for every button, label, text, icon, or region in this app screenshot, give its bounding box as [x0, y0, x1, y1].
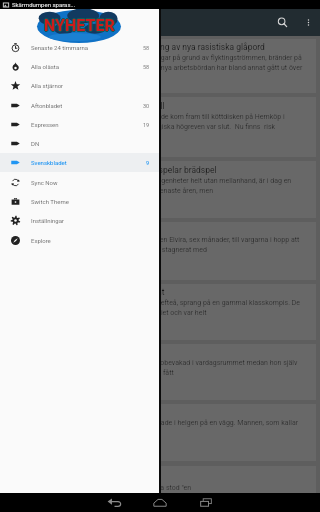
button[interactable]: DN [0, 134, 159, 153]
staticText: Efter ett halvår i fångenskap flyttas de… [11, 236, 307, 253]
staticText: Köttet var slut och kunderna blev helt f… [11, 101, 165, 111]
staticText: Aftonbladet [31, 102, 63, 109]
staticText: Sync Now [31, 179, 58, 186]
button[interactable]: Switch Theme [0, 192, 159, 211]
button[interactable]: Explore [0, 231, 159, 250]
button[interactable]: More options [296, 9, 320, 36]
staticText: Switch Theme [31, 198, 69, 205]
staticText: Expressen [31, 121, 59, 128]
button[interactable]: Skräcken när tvååring gjorde [4, 344, 316, 400]
staticText: Alla olästa [31, 63, 60, 70]
staticText: 9 [146, 160, 150, 166]
staticText: NYHETER [45, 16, 116, 35]
staticText: NYHETER [44, 16, 115, 35]
button[interactable]: Bostadsbristen: Utländska spekulanter sp… [4, 161, 316, 218]
button[interactable]: Nytt knep för att undvika gammal bekant [4, 284, 316, 340]
button[interactable]: Search [268, 9, 296, 36]
button[interactable]: Köttet var slut och kunderna blev helt f… [4, 97, 316, 157]
button[interactable]: Allt fler polisanmälningar: Ökad utveckl… [4, 39, 316, 93]
staticText: Senaste 24 timmarna [31, 44, 89, 51]
button[interactable]: Den 43-årige mannen från Upplands Väsby … [4, 404, 316, 461]
button[interactable]: Inställningar [0, 211, 159, 230]
staticText: Det blev ett rejält chockbesked för kund… [11, 113, 307, 130]
staticText: Den 43-årige mannen från Upplands Väsby … [11, 419, 307, 436]
staticText: NYHETER [43, 16, 114, 35]
staticText: NYHETER [44, 15, 115, 34]
staticText: Det var i helgen som Johan, 29, säljare … [11, 299, 307, 316]
button[interactable]: Back [91, 493, 137, 512]
button[interactable]: Svenskbladet [0, 153, 159, 172]
staticText: Inställningar [31, 217, 64, 224]
staticText: NYHETER [44, 17, 115, 36]
staticText: Explore [31, 237, 51, 244]
staticText: Bostadsbristen: Utländska spekulanter sp… [11, 165, 217, 175]
staticText: Allt fler svenskar väljer numera att hyr… [11, 177, 307, 194]
button[interactable]: Alla stjärnor [0, 76, 159, 95]
button[interactable]: Senaste 24 timmarna [0, 38, 159, 57]
staticText: Nytt knep för att undvika gammal bekant [11, 287, 165, 297]
button[interactable]: Expressen [0, 115, 159, 134]
staticText: Mamman lämnade sin lilla tvååriga dotter… [11, 359, 307, 376]
staticText: Svenskbladet [31, 159, 67, 166]
staticText: 58 [143, 45, 150, 51]
button[interactable]: Alla olästa [0, 57, 159, 76]
staticText: Alla stjärnor [31, 82, 64, 89]
button[interactable]: Aftonbladet [0, 96, 159, 115]
staticText: 30 [143, 103, 150, 109]
staticText: Polisen larmar om en kraftig ökning av a… [11, 54, 307, 81]
button[interactable]: Sync Now [0, 173, 159, 192]
staticText: Allt fler polisanmälningar: Ökad utveckl… [11, 42, 265, 52]
button[interactable]: Home [137, 493, 183, 512]
button[interactable]: Recents [183, 493, 229, 512]
staticText: Skärmdumpen sparas... [12, 1, 76, 8]
staticText: DN [31, 140, 40, 147]
staticText: Hon fyllde nio år, och överst på hennes … [11, 484, 192, 492]
staticText: 19 [143, 122, 150, 128]
button[interactable]: Efter ett halvår i fångenskap flyttas de… [4, 222, 316, 280]
button[interactable]: Hon fyllde nio år, och överst på hennes … [4, 466, 316, 512]
staticText: 58 [143, 64, 150, 70]
